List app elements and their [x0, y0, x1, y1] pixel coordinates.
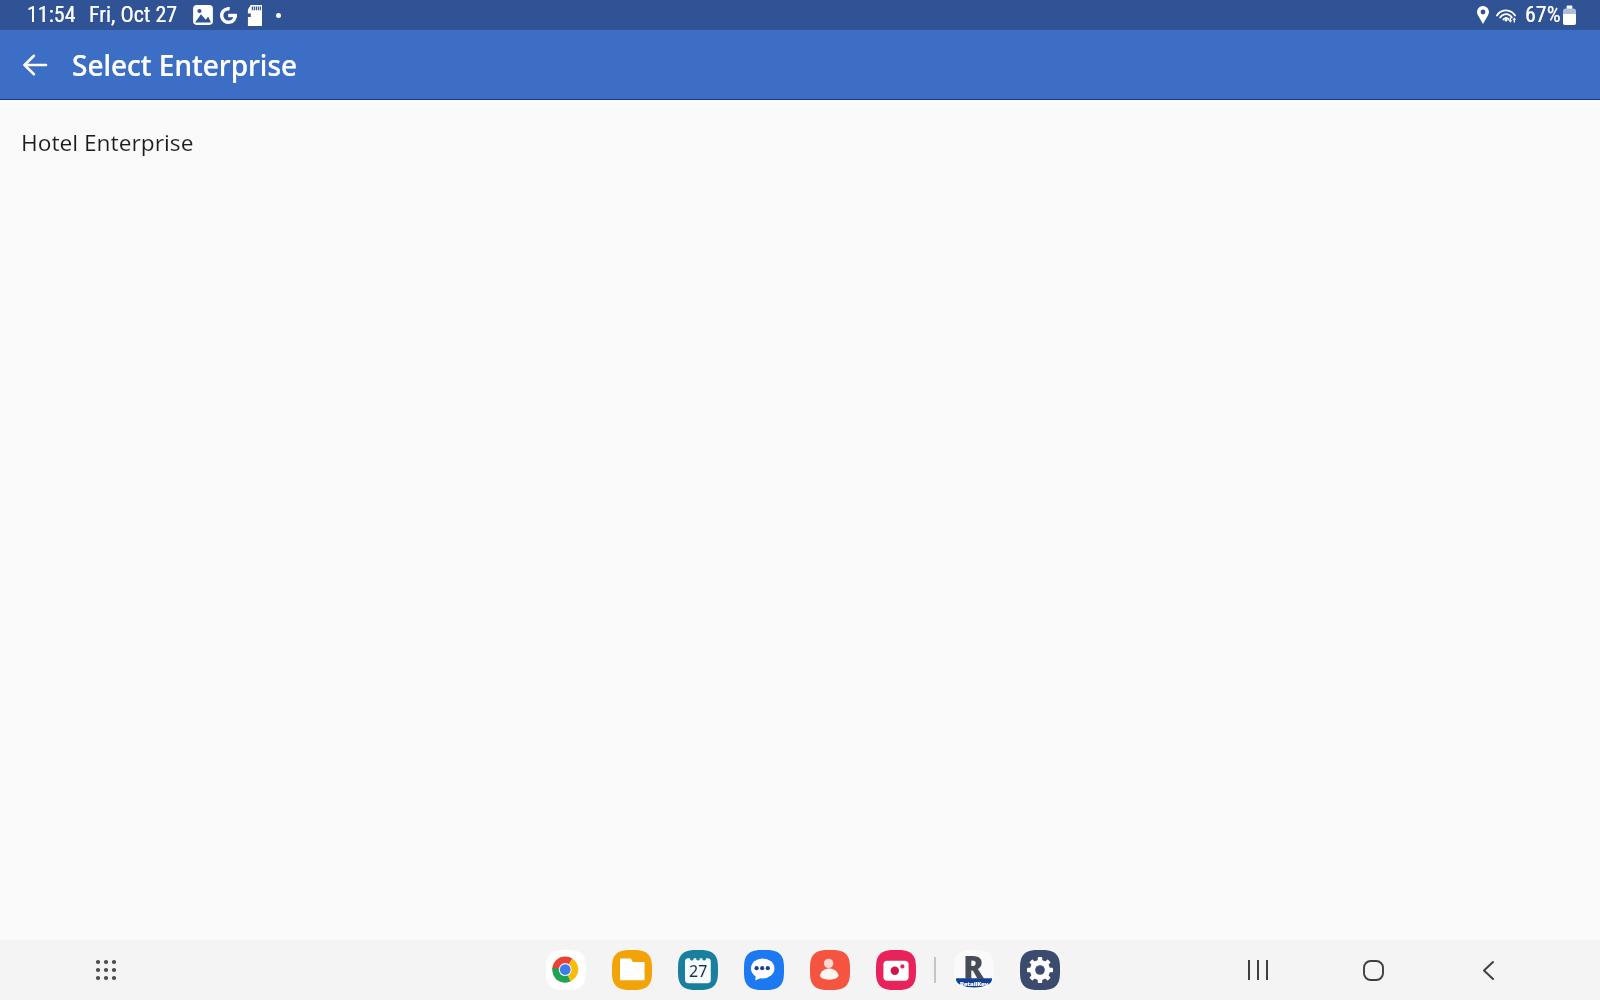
- button[interactable]: Home: [1349, 946, 1397, 994]
- staticText: Select Enterprise: [72, 46, 298, 84]
- button[interactable]: Recent apps: [1234, 946, 1282, 994]
- staticText: R: [963, 946, 984, 986]
- button[interactable]: Contacts: [810, 950, 850, 990]
- button[interactable]: Calendar: [678, 950, 718, 990]
- button[interactable]: Navigate up: [11, 41, 59, 89]
- staticText: 11:54: [27, 2, 76, 28]
- button[interactable]: RetailKey: [954, 950, 994, 990]
- button[interactable]: My Files: [612, 950, 652, 990]
- button[interactable]: Camera: [876, 950, 916, 990]
- button[interactable]: Chrome: [546, 950, 586, 990]
- button[interactable]: Apps: [86, 950, 126, 990]
- staticText: Fri, Oct 27: [89, 2, 178, 28]
- button[interactable]: Back: [1464, 946, 1512, 994]
- button[interactable]: Messages: [744, 950, 784, 990]
- staticText: Hotel Enterprise: [21, 127, 194, 158]
- staticText: RetailKey: [960, 980, 989, 988]
- staticText: 27: [689, 960, 708, 982]
- button[interactable]: Hotel Enterprise: [0, 106, 1600, 178]
- staticText: 67%: [1525, 2, 1561, 28]
- button[interactable]: Settings: [1020, 950, 1060, 990]
